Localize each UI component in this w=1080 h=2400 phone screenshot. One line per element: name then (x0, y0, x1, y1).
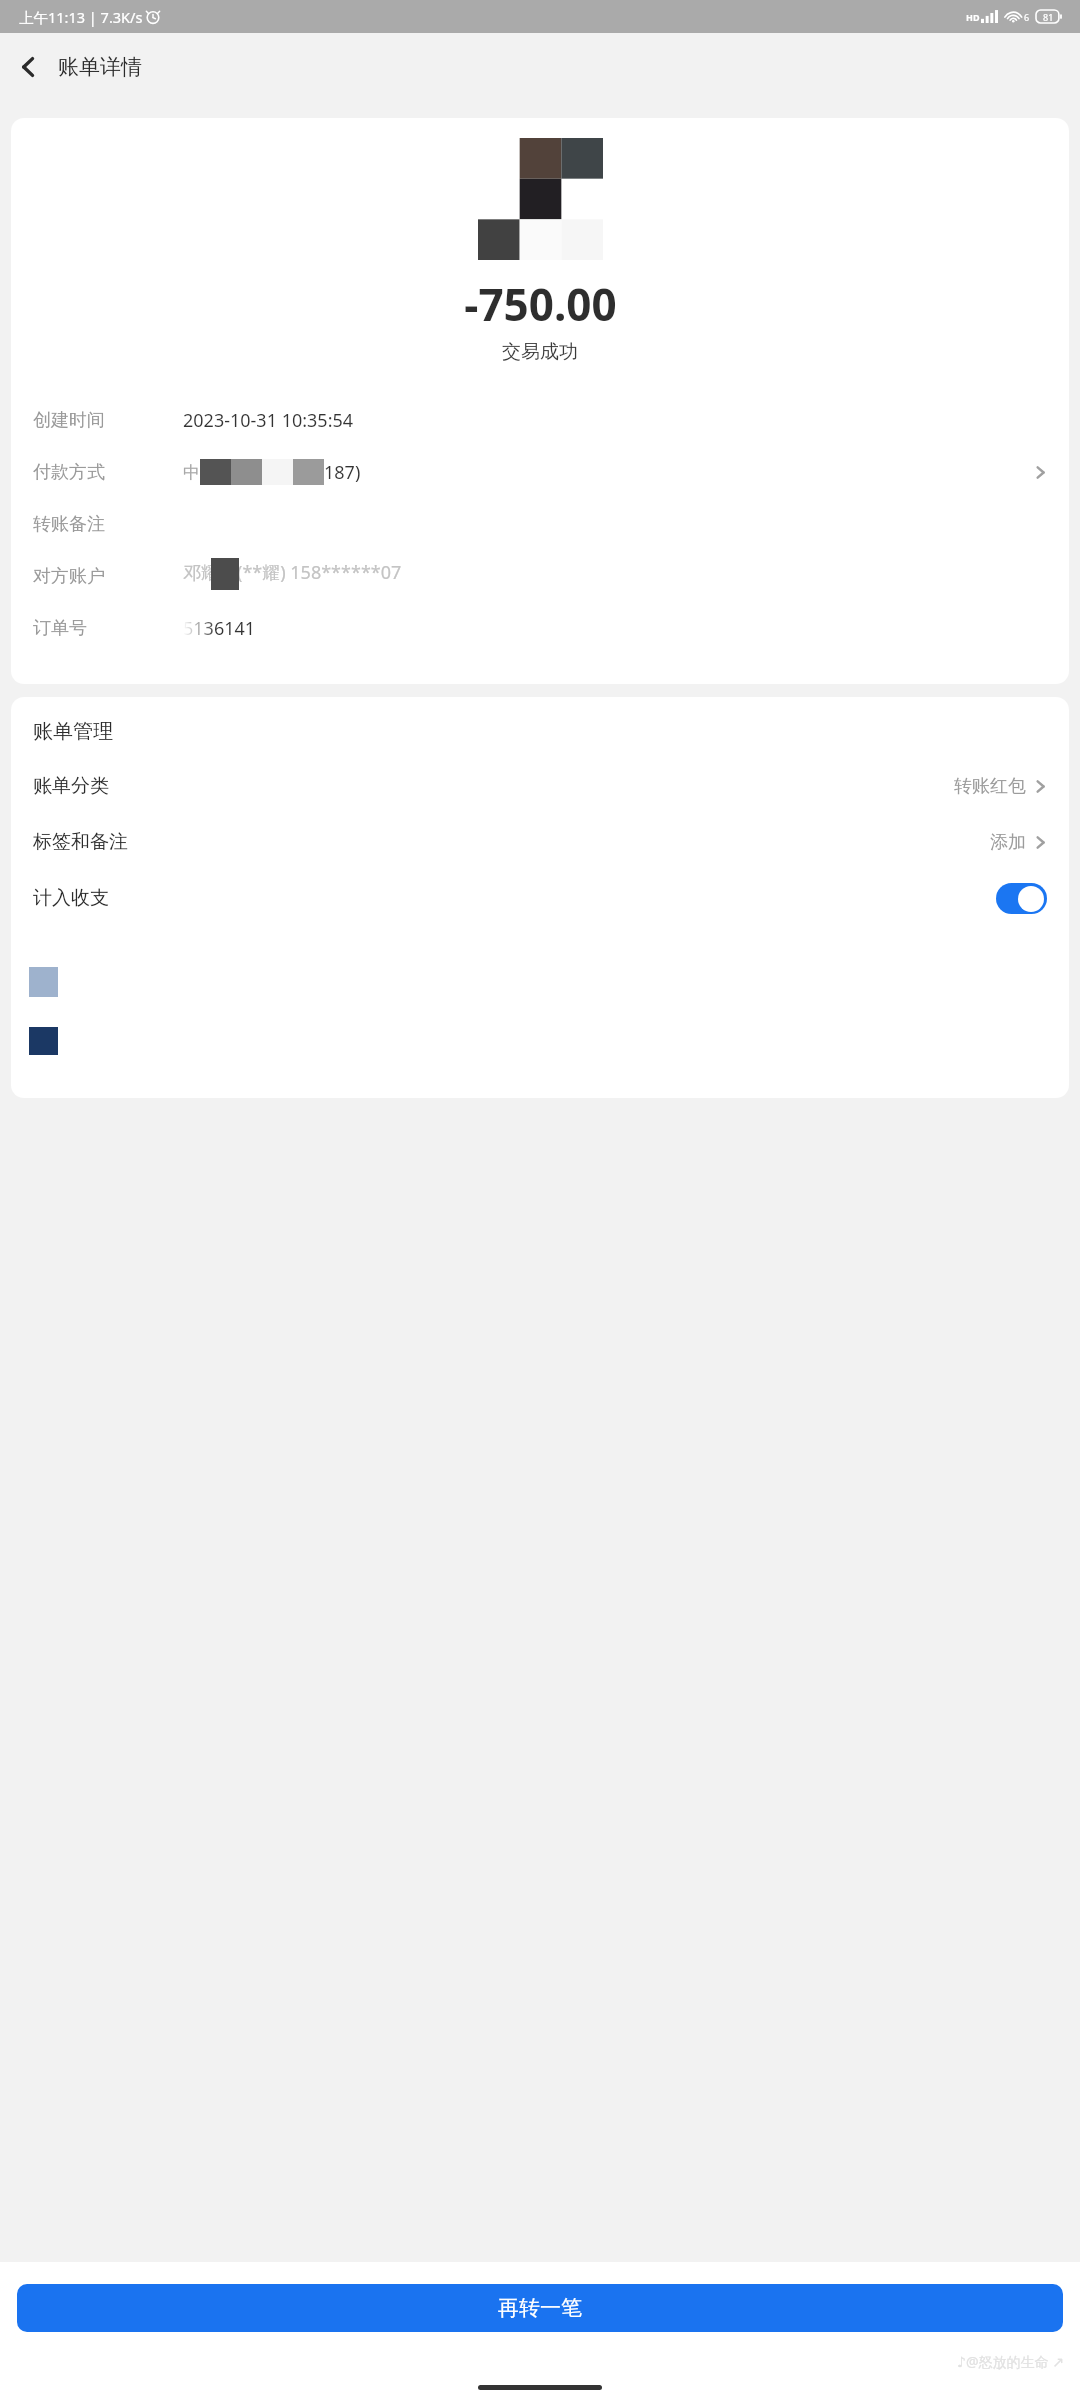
staticText: 账单分类 (33, 774, 109, 798)
staticText: ♪@怒放的生命 ↗ (957, 2352, 1064, 2371)
button[interactable]: 账单分类 (11, 758, 1069, 814)
staticText: 转账备注 (33, 513, 183, 536)
staticText: 邓耀翀(**耀) 158******07 (183, 560, 402, 585)
staticText: 上午11:13 | 7.3K/s (19, 7, 143, 27)
staticText: 创建时间 (33, 409, 183, 432)
staticText: 对方账户 (33, 565, 183, 588)
staticText: 标签和备注 (33, 830, 128, 854)
staticText: 交易成功 (502, 340, 578, 364)
button[interactable]: Back (0, 38, 58, 96)
staticText: 订单号 (33, 617, 183, 640)
other: 计入收支 开关 (996, 883, 1047, 914)
staticText: 81 (1043, 11, 1054, 23)
staticText: 187) (324, 460, 361, 485)
button[interactable]: 付款方式 (11, 446, 1069, 498)
staticText: 5136141 (183, 616, 256, 641)
staticText: 添加 (990, 831, 1026, 854)
button[interactable]: 再转一笔 (17, 2284, 1063, 2332)
staticText: 计入收支 (33, 886, 109, 910)
staticText: 中 (183, 462, 200, 483)
staticText: 转账红包 (954, 775, 1026, 798)
staticText: 账单管理 (33, 719, 113, 744)
staticText: 2023-10-31 10:35:54 (183, 408, 354, 433)
staticText: 账单详情 (58, 54, 142, 80)
staticText: HD (966, 11, 980, 23)
staticText: 再转一笔 (498, 2295, 582, 2321)
staticText: 付款方式 (33, 461, 183, 484)
staticText: -750.00 (464, 274, 617, 334)
button[interactable]: 计入收支 (11, 870, 1069, 926)
staticText: 6 (1024, 11, 1030, 23)
button[interactable]: 标签和备注 (11, 814, 1069, 870)
